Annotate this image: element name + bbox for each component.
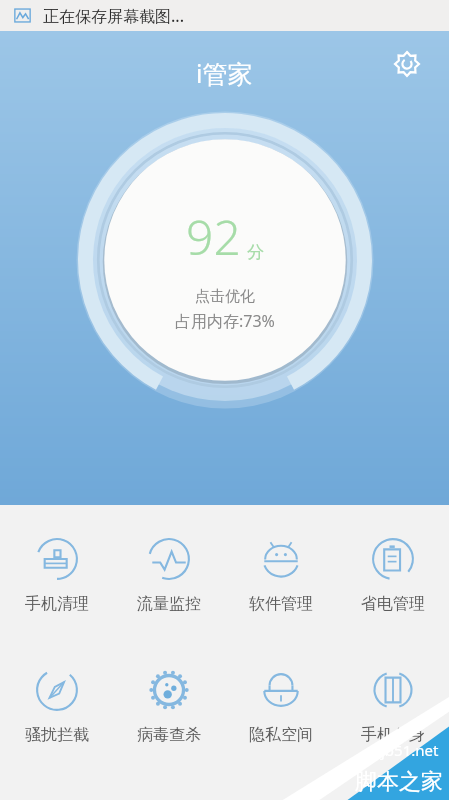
button[interactable]: 软件管理 [225,533,337,618]
button[interactable]: Settings [387,44,427,84]
button[interactable]: 隐私空间 [225,664,337,749]
staticText: 点击优化 [195,287,255,306]
staticText: 省电管理 [361,594,425,614]
staticText: 病毒查杀 [137,725,201,745]
staticText: 手机分身 [361,725,425,745]
button[interactable]: 手机分身 [337,664,449,749]
button[interactable]: 92 [75,110,375,410]
staticText: 占用内存:73% [175,310,275,332]
staticText: 隐私空间 [249,725,313,745]
staticText: 脚本之家 [355,768,443,796]
button[interactable]: 手机清理 [0,533,113,618]
staticText: 流量监控 [137,594,201,614]
staticText: jb51.net [381,740,439,760]
staticText: 软件管理 [249,594,313,614]
staticText: 92 [186,204,241,269]
button[interactable]: 省电管理 [337,533,449,618]
staticText: 正在保存屏幕截图... [43,5,185,27]
button[interactable]: 病毒查杀 [113,664,225,749]
staticText: 分 [247,242,264,263]
button[interactable]: 骚扰拦截 [0,664,113,749]
staticText: 骚扰拦截 [25,725,89,745]
staticText: i管家 [196,56,253,90]
staticText: 手机清理 [25,594,89,614]
button[interactable]: 流量监控 [113,533,225,618]
